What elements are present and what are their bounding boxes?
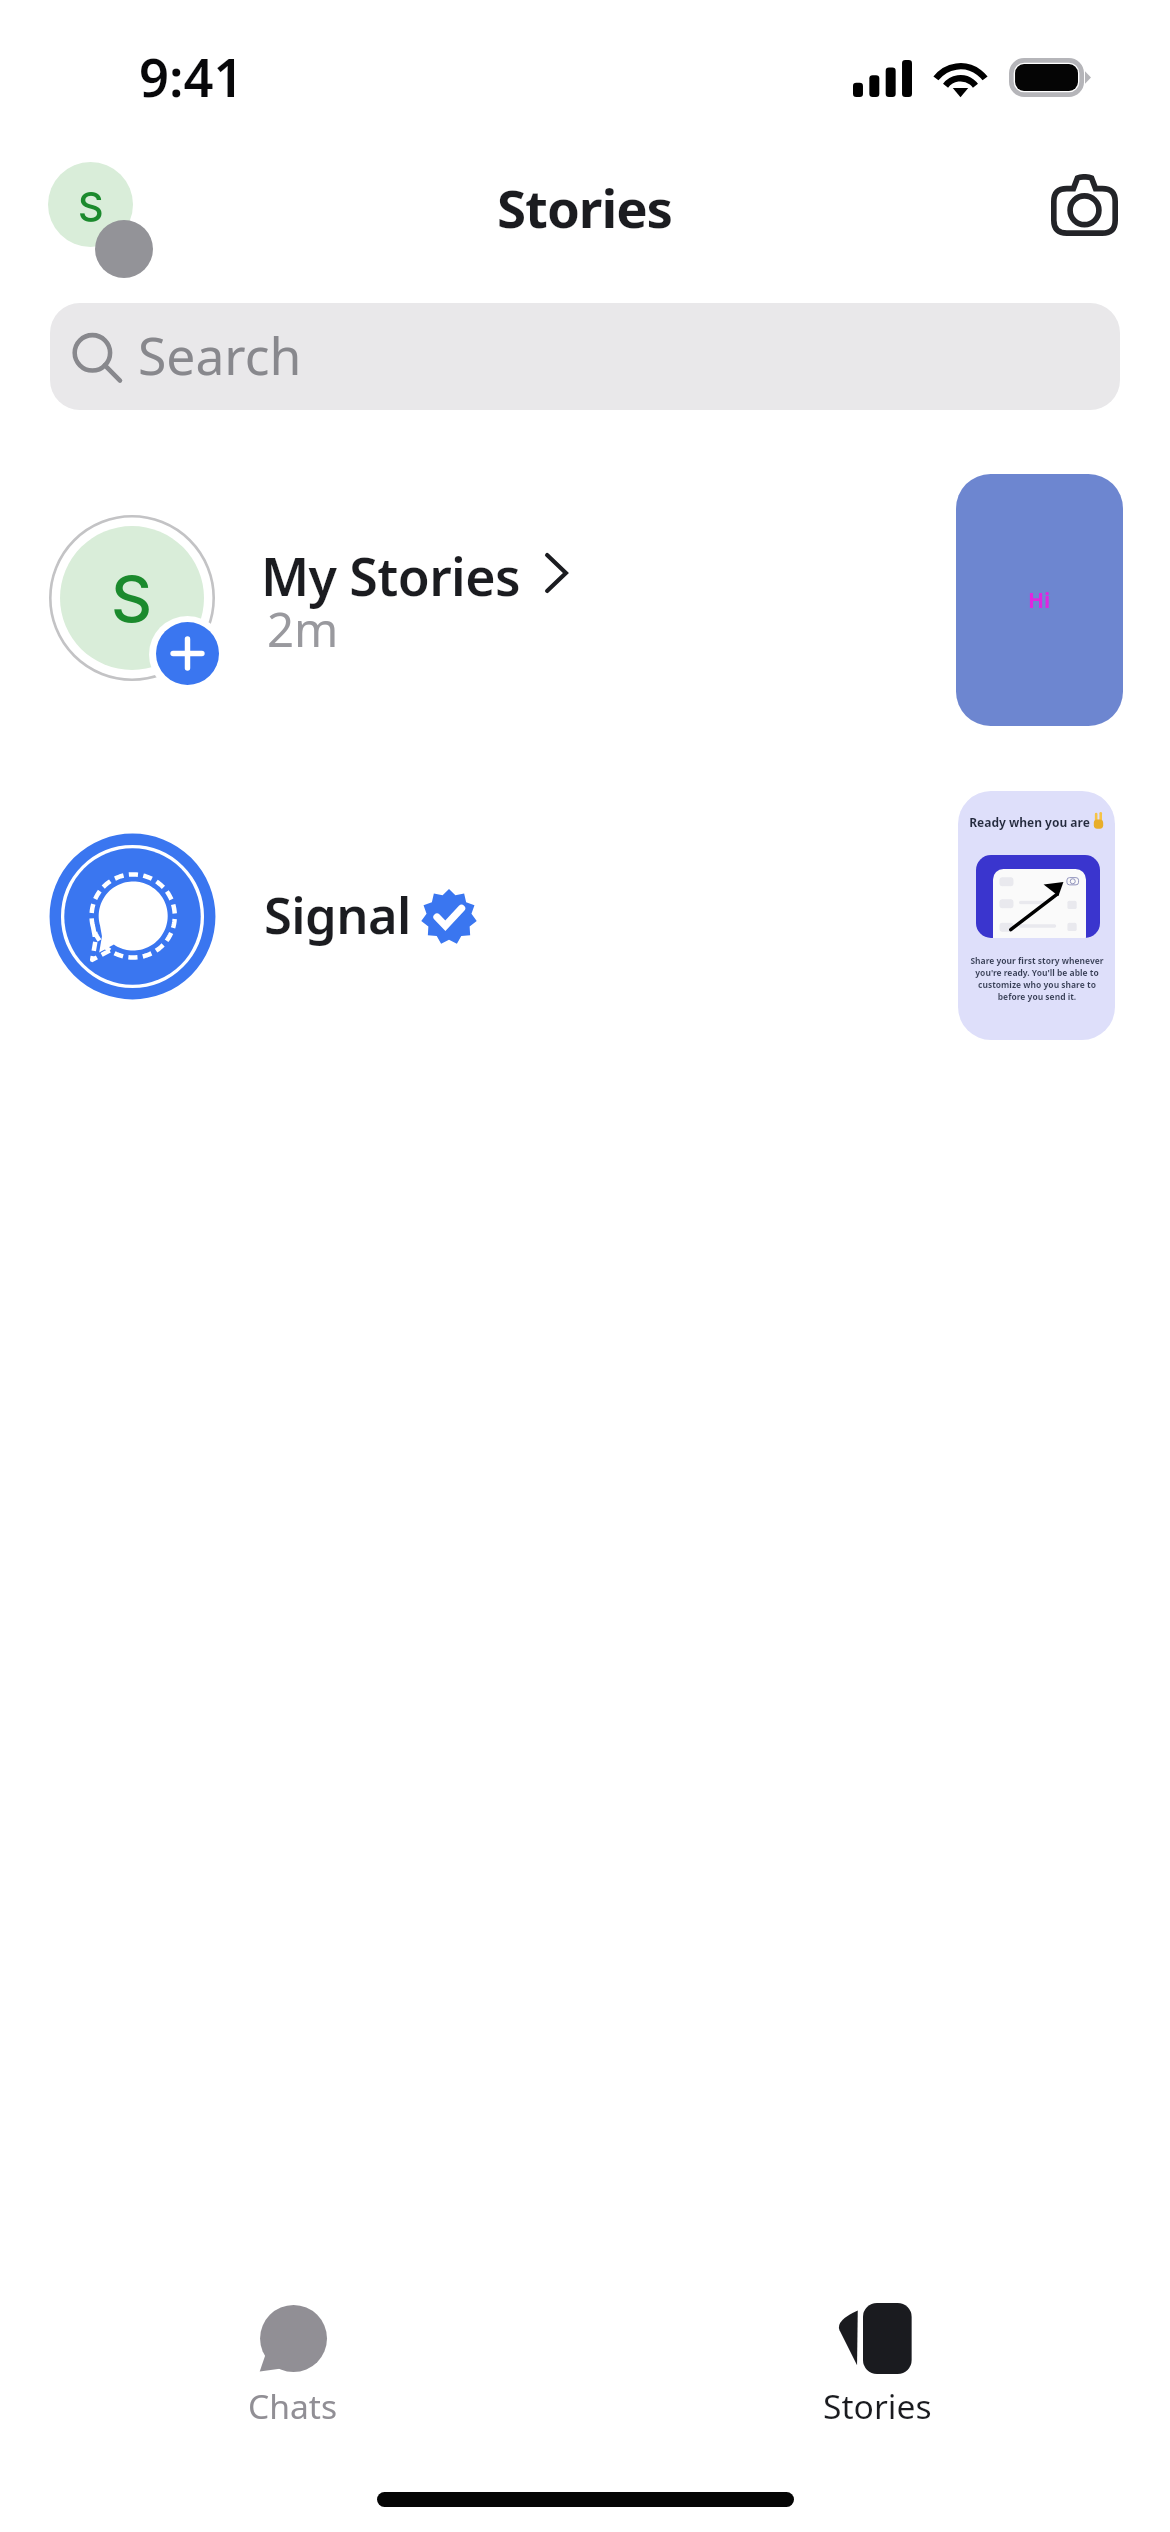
staticText: 2m xyxy=(267,596,339,661)
staticText: Ready when you are xyxy=(969,814,1090,830)
button[interactable]: Add story xyxy=(156,622,219,685)
button[interactable]: Signal xyxy=(0,768,1170,1068)
button[interactable]: Chats xyxy=(0,2303,585,2429)
button[interactable]: Profile xyxy=(24,141,192,309)
staticText: Hi xyxy=(1028,586,1051,615)
staticText: 9:41 xyxy=(139,41,244,113)
staticText: Share your first story whenever you're r… xyxy=(965,955,1109,1003)
button[interactable]: S xyxy=(0,450,1170,750)
button[interactable]: Stories xyxy=(585,2303,1170,2429)
button[interactable]: Search xyxy=(50,303,1120,410)
staticText: S xyxy=(78,183,104,231)
staticText: Search xyxy=(138,320,302,390)
staticText: Stories xyxy=(823,2383,932,2429)
staticText: My Stories xyxy=(261,541,520,612)
staticText: S xyxy=(111,560,153,637)
button[interactable]: Camera xyxy=(1006,127,1162,283)
staticText: Stories xyxy=(497,172,673,244)
staticText: Chats xyxy=(248,2383,338,2429)
staticText: Signal xyxy=(264,880,411,949)
